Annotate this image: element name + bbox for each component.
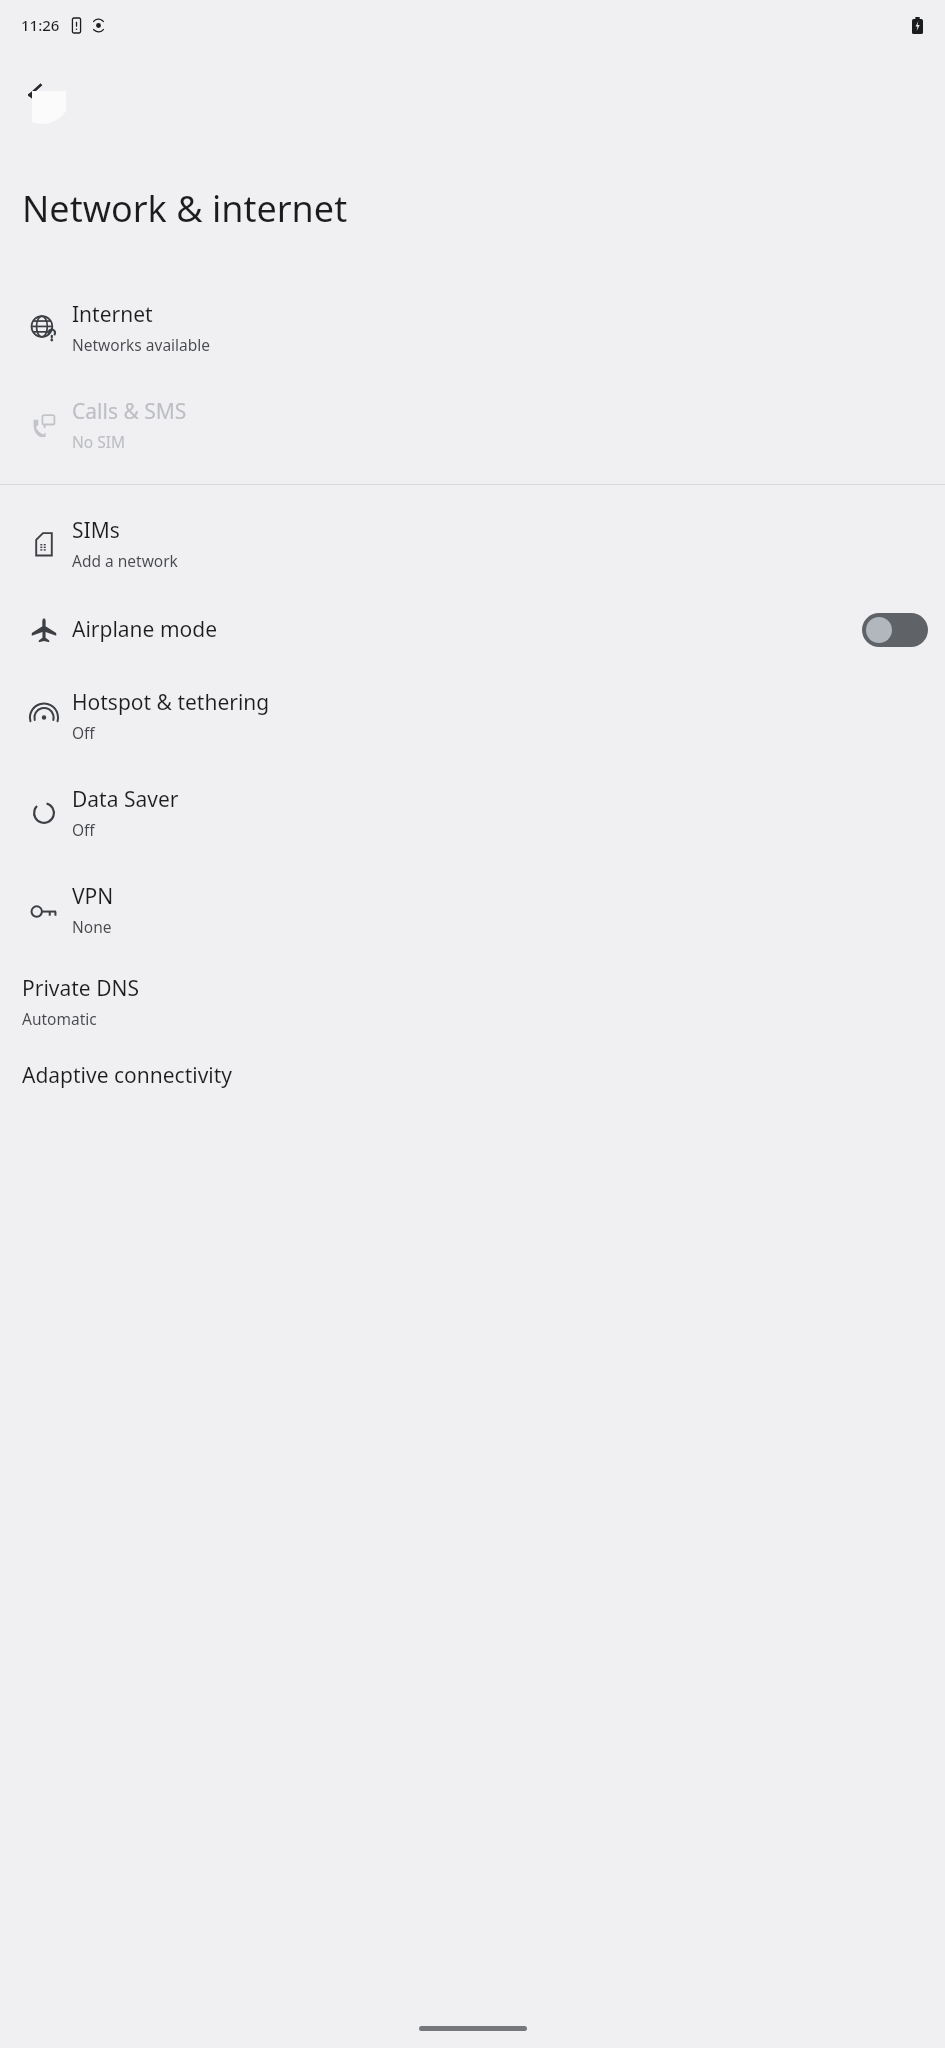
staticText: No SIM xyxy=(72,431,126,452)
staticText: Networks available xyxy=(72,334,211,355)
staticText: Calls & SMS xyxy=(72,397,187,426)
staticText: Automatic xyxy=(22,1008,97,1029)
button[interactable]: Calls & SMS xyxy=(0,376,945,473)
button[interactable]: Airplane mode xyxy=(0,592,945,667)
staticText: Airplane mode xyxy=(72,615,218,644)
staticText: Add a network xyxy=(72,550,178,571)
staticText: Hotspot & tethering xyxy=(72,688,270,717)
staticText: VPN xyxy=(72,882,114,911)
staticText: Network & internet xyxy=(22,184,348,233)
staticText: Off xyxy=(72,819,95,840)
staticText: 11:26 xyxy=(21,15,60,35)
staticText: SIMs xyxy=(72,516,120,545)
button[interactable]: Hotspot & tethering xyxy=(0,667,945,764)
button[interactable]: Private DNS xyxy=(0,958,945,1045)
button[interactable]: Data Saver xyxy=(0,764,945,861)
staticText: Adaptive connectivity xyxy=(22,1061,233,1090)
button[interactable]: Adaptive connectivity xyxy=(0,1045,945,1106)
button[interactable]: Airplane mode toggle xyxy=(862,613,928,647)
staticText: Off xyxy=(72,722,95,743)
staticText: Data Saver xyxy=(72,785,179,814)
staticText: Private DNS xyxy=(22,974,139,1003)
staticText: None xyxy=(72,916,112,937)
button[interactable]: VPN xyxy=(0,861,945,958)
button[interactable]: Internet xyxy=(0,279,945,376)
staticText: Internet xyxy=(72,300,153,329)
button[interactable]: Back xyxy=(13,66,71,124)
button[interactable]: SIMs xyxy=(0,495,945,592)
